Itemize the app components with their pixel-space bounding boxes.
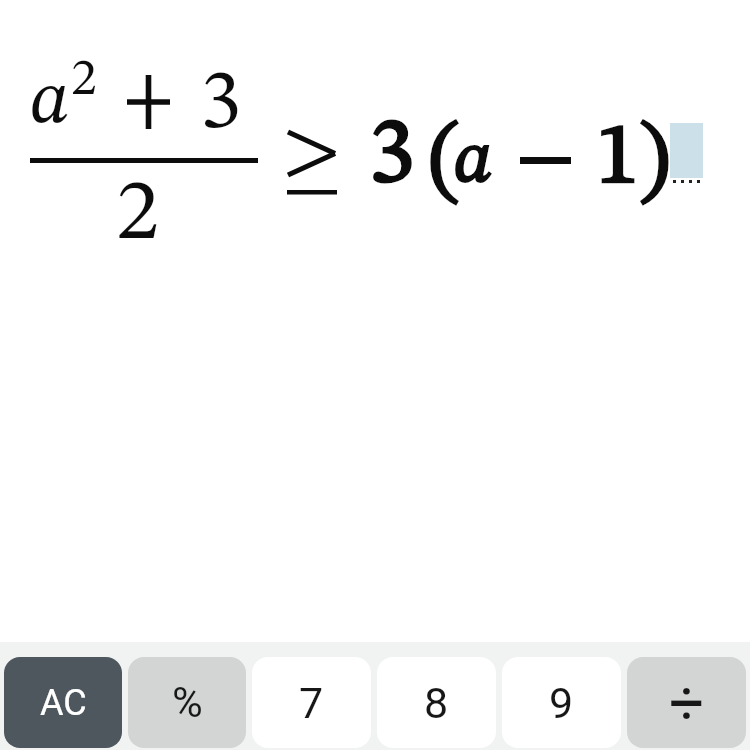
button[interactable]: % [128,657,246,748]
button[interactable]: AC [4,657,122,748]
staticText: a [454,126,493,198]
staticText: 7 [299,678,324,728]
button[interactable]: ÷ [627,657,746,748]
staticText: 3 [369,110,416,203]
staticText: ) [639,118,670,208]
staticText: % [172,678,203,727]
staticText: 2 [116,172,160,259]
staticText: 9 [549,678,574,728]
staticText: AC [40,682,87,724]
staticText: ( [429,118,460,208]
button[interactable]: 7 [252,657,371,748]
staticText: 3 [200,63,242,147]
staticText: a [30,66,70,140]
staticText: 8 [424,678,449,728]
staticText: ÷ [669,666,705,739]
staticText: 1 [596,116,640,203]
button[interactable]: 9 [502,657,621,748]
button[interactable]: 8 [377,657,496,748]
staticText: 2 [71,54,97,106]
